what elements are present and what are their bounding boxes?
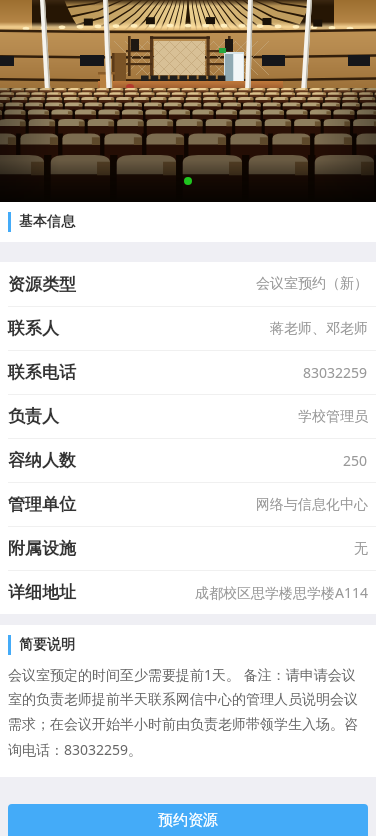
staticText: 附属设施 [8, 538, 76, 559]
staticText: 83032259 [303, 363, 368, 382]
staticText: 无 [354, 540, 368, 558]
staticText: 成都校区思学楼思学楼A114 [195, 583, 368, 602]
staticText: 联系电话 [8, 362, 76, 383]
button[interactable]: 联系电话 [0, 351, 376, 394]
staticText: 会议室预约（新） [256, 275, 368, 293]
staticText: 管理单位 [8, 494, 76, 515]
staticText: 会议室预定的时间至少需要提前1天。 备注：请申请会议室的负责老师提前半天联系网信… [8, 665, 368, 759]
staticText: 基本信息 [19, 213, 75, 231]
staticText: 简要说明 [19, 636, 75, 654]
staticText: 负责人 [8, 406, 59, 427]
staticText: 网络与信息化中心 [256, 496, 368, 514]
button[interactable]: 预约资源 [8, 804, 368, 836]
staticText: 250 [343, 451, 368, 470]
staticText: 详细地址 [8, 582, 76, 603]
staticText: 容纳人数 [8, 450, 76, 471]
button[interactable]: 管理单位 [0, 483, 376, 526]
button[interactable]: 联系人 [0, 307, 376, 350]
staticText: 学校管理员 [298, 408, 368, 426]
staticText: 蒋老师、邓老师 [270, 320, 368, 338]
staticText: 预约资源 [158, 811, 218, 830]
button[interactable]: 负责人 [0, 395, 376, 438]
button[interactable]: 容纳人数 [0, 439, 376, 482]
button[interactable]: 附属设施 [0, 527, 376, 570]
staticText: 资源类型 [8, 274, 76, 295]
staticText: 联系人 [8, 318, 59, 339]
button[interactable]: 详细地址 [0, 571, 376, 614]
button[interactable]: 资源类型 [0, 262, 376, 306]
button[interactable]: 会议室图片 [0, 0, 376, 202]
